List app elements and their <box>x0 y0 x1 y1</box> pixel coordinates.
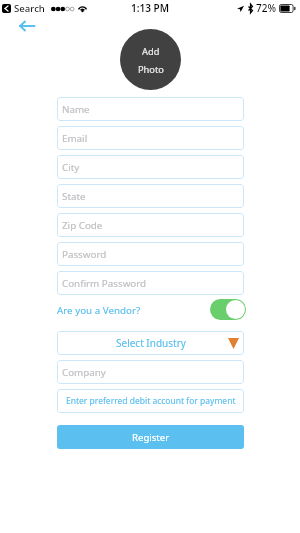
staticText: Enter preferred debit account for paymen… <box>66 395 236 407</box>
staticText: Email <box>62 132 88 145</box>
button[interactable]: State <box>57 184 244 208</box>
staticText: Zip Code <box>62 219 103 232</box>
button[interactable]: Register <box>57 425 244 449</box>
staticText: City <box>62 161 80 174</box>
staticText: Search <box>14 2 45 15</box>
staticText: Are you a Vendor? <box>57 304 141 317</box>
staticText: Photo <box>138 63 164 76</box>
staticText: Password <box>62 248 107 261</box>
staticText: 72% <box>256 1 276 15</box>
button[interactable]: Confirm Password <box>57 271 244 295</box>
button[interactable]: Company <box>57 360 244 384</box>
button[interactable]: Vendor toggle <box>210 299 246 320</box>
button[interactable]: Email <box>57 126 244 150</box>
button[interactable]: Enter preferred debit account for paymen… <box>57 389 244 413</box>
button[interactable]: Back <box>15 16 39 35</box>
button[interactable]: Name <box>57 97 244 121</box>
staticText: Name <box>62 103 90 116</box>
button[interactable]: Add <box>120 29 181 90</box>
button[interactable]: Password <box>57 242 244 266</box>
staticText: State <box>62 190 86 203</box>
button[interactable]: Select Industry <box>57 331 244 355</box>
staticText: Confirm Password <box>62 277 147 290</box>
button[interactable]: Zip Code <box>57 213 244 237</box>
staticText: 1:13 PM <box>131 1 169 15</box>
staticText: Company <box>62 366 106 379</box>
staticText: Add <box>142 45 160 58</box>
button[interactable]: City <box>57 155 244 179</box>
staticText: Select Industry <box>116 336 186 350</box>
staticText: Register <box>132 431 170 444</box>
